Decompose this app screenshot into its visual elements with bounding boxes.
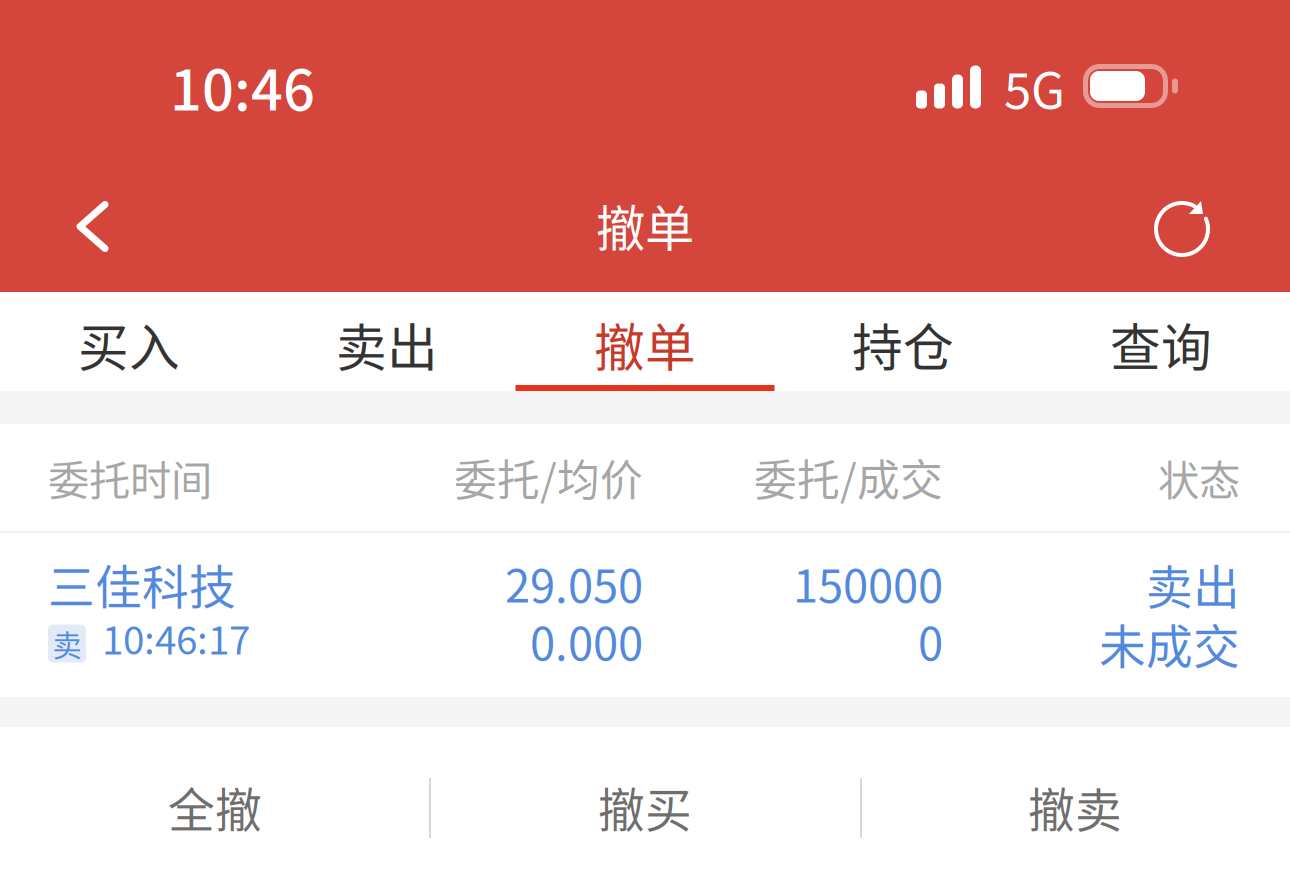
staticText: 5G (1004, 51, 1065, 123)
staticText: 委托/均价 (454, 447, 643, 508)
button[interactable]: 卖出 (258, 292, 516, 391)
button[interactable]: 全撤 (0, 727, 430, 883)
staticText: 撤买 (598, 773, 692, 841)
staticText: 150000 (793, 550, 943, 616)
staticText: 查询 (1110, 308, 1212, 381)
staticText: 撤单 (596, 189, 694, 261)
staticText: 卖 (52, 622, 81, 665)
button[interactable]: 三佳科技 (0, 533, 1290, 697)
staticText: 状态 (1158, 448, 1240, 507)
staticText: 委托时间 (48, 448, 212, 507)
staticText: 卖出 (1146, 550, 1240, 618)
staticText: 卖出 (336, 308, 438, 381)
staticText: 全撤 (168, 773, 262, 841)
button[interactable]: 撤卖 (860, 727, 1290, 883)
staticText: 买入 (78, 308, 180, 381)
button[interactable]: 查询 (1032, 292, 1290, 391)
staticText: 0.000 (530, 608, 643, 673)
staticText: 0 (918, 608, 943, 673)
button[interactable]: 撤买 (430, 727, 860, 883)
staticText: 撤卖 (1028, 773, 1122, 841)
staticText: 10:46:17 (102, 610, 250, 666)
button[interactable]: 买入 (0, 292, 258, 391)
staticText: 10:46 (170, 45, 315, 127)
button[interactable]: 撤单 (516, 292, 774, 391)
staticText: 未成交 (1099, 610, 1240, 677)
staticText: 三佳科技 (48, 550, 236, 618)
staticText: 29.050 (505, 550, 643, 616)
staticText: 撤单 (594, 308, 696, 381)
button[interactable]: Back (0, 182, 166, 285)
staticText: 委托/成交 (754, 447, 943, 508)
button[interactable]: 持仓 (774, 292, 1032, 391)
staticText: 持仓 (852, 308, 954, 381)
button[interactable]: Refresh (1094, 182, 1290, 286)
